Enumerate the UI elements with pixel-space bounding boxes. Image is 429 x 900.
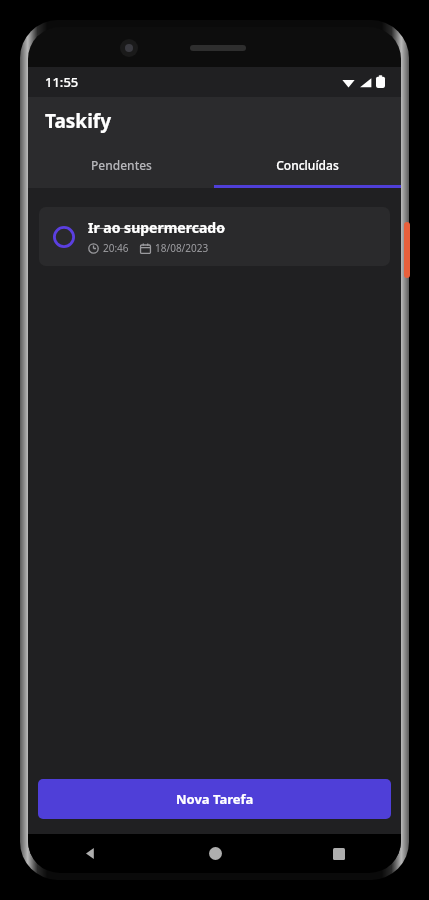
button[interactable]: Concluídas	[214, 145, 401, 185]
staticText: Ir ao supermercado	[88, 218, 225, 237]
staticText: 11:55	[45, 73, 79, 91]
staticText: Nova Tarefa	[176, 790, 254, 808]
staticText: Concluídas	[276, 157, 339, 173]
button[interactable]: Recent apps	[277, 834, 401, 873]
button[interactable]: Marcar tarefa	[39, 207, 390, 266]
button[interactable]: Pendentes	[28, 145, 214, 185]
other: Marcar tarefa	[53, 226, 75, 248]
button[interactable]: Back	[28, 834, 153, 873]
button[interactable]: Home	[153, 834, 277, 873]
staticText: Pendentes	[91, 157, 152, 173]
staticText: 18/08/2023	[155, 241, 209, 255]
other: Power	[404, 222, 410, 278]
button[interactable]: Nova Tarefa	[38, 779, 391, 819]
staticText: Taskify	[45, 108, 112, 134]
staticText: 20:46	[103, 241, 129, 255]
